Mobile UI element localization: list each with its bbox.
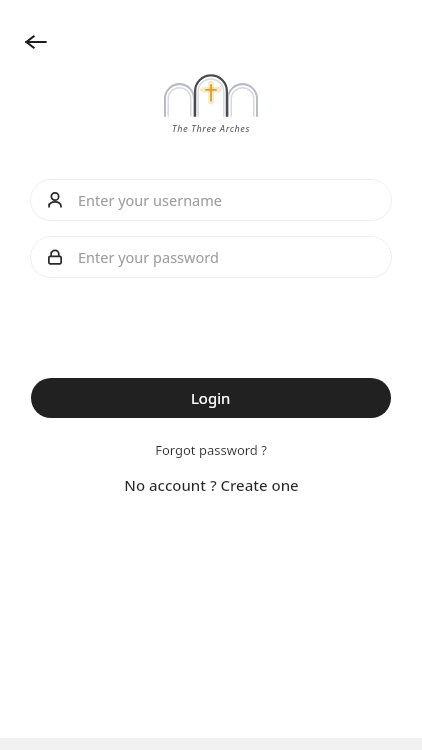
button[interactable]: Login: [31, 378, 391, 418]
button[interactable]: Enter your username: [30, 179, 392, 221]
button[interactable]: Back: [14, 20, 58, 64]
staticText: Login: [191, 388, 231, 408]
staticText: The Three Arches: [172, 122, 251, 134]
staticText: No account ? Create one: [124, 475, 299, 495]
button[interactable]: Enter your password: [30, 236, 392, 278]
staticText: Forgot password ?: [155, 441, 267, 459]
button[interactable]: No account ? Create one: [116, 471, 307, 499]
staticText: Enter your username: [78, 190, 222, 210]
button[interactable]: Forgot password ?: [147, 437, 275, 463]
staticText: Enter your password: [78, 247, 219, 267]
